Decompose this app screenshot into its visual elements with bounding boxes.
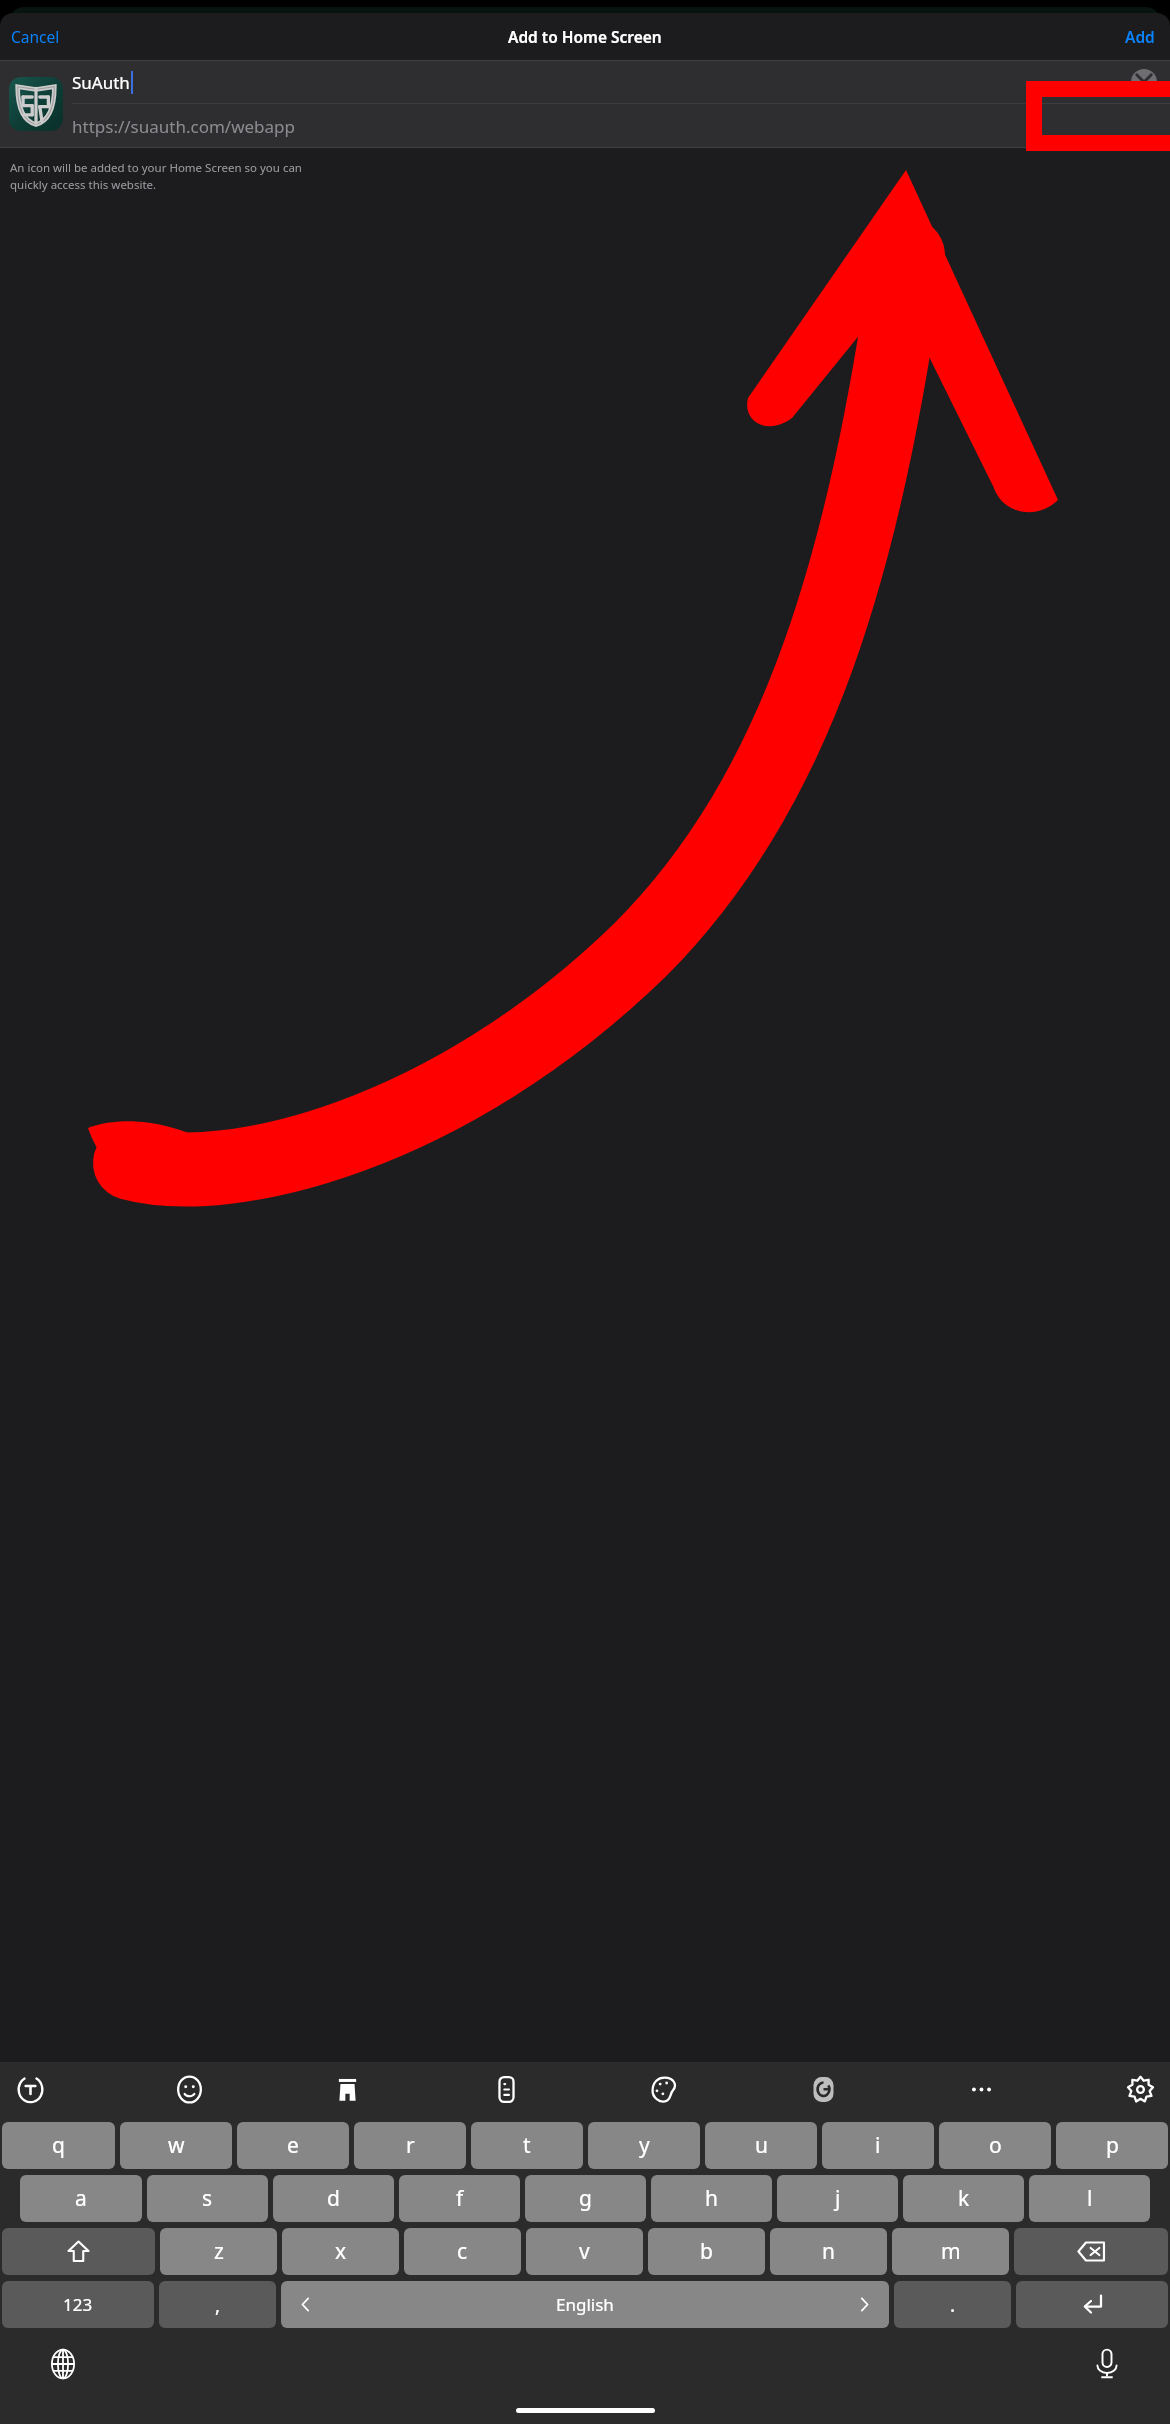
staticText: y — [639, 2131, 650, 2160]
staticText: e — [287, 2131, 299, 2160]
button[interactable]: b — [648, 2228, 765, 2275]
button[interactable]: r — [354, 2122, 466, 2169]
staticText: An icon will be added to your Home Scree… — [10, 160, 302, 192]
staticText: Add — [1125, 26, 1155, 47]
button[interactable]: c — [404, 2228, 521, 2275]
button[interactable]: More options — [959, 2067, 1003, 2111]
staticText: t — [523, 2131, 531, 2160]
button[interactable]: h — [651, 2175, 772, 2222]
staticText: f — [456, 2184, 464, 2213]
button[interactable]: y — [588, 2122, 700, 2169]
button[interactable]: Text formatting — [8, 2067, 52, 2111]
button[interactable]: n — [770, 2228, 887, 2275]
button[interactable]: Clear text — [1131, 69, 1157, 95]
staticText: q — [52, 2131, 65, 2160]
button[interactable]: s — [147, 2175, 268, 2222]
button[interactable]: z — [160, 2228, 277, 2275]
staticText: g — [579, 2184, 592, 2213]
button[interactable]: Settings — [1118, 2067, 1162, 2111]
button[interactable]: j — [777, 2175, 898, 2222]
button[interactable]: Sticker store — [325, 2067, 369, 2111]
button[interactable]: Backspace — [1014, 2228, 1168, 2275]
staticText: m — [941, 2237, 961, 2266]
button[interactable]: o — [939, 2122, 1051, 2169]
staticText: , — [215, 2292, 221, 2318]
button[interactable]: a — [20, 2175, 142, 2222]
button[interactable]: Emoji — [167, 2067, 211, 2111]
staticText: k — [958, 2184, 970, 2213]
button[interactable]: i — [822, 2122, 934, 2169]
button[interactable]: Cancel — [5, 19, 66, 54]
staticText: b — [700, 2237, 713, 2266]
staticText: c — [457, 2237, 468, 2266]
staticText: v — [579, 2237, 590, 2266]
button[interactable]: g — [525, 2175, 646, 2222]
staticText: https://suauth.com/webapp — [72, 115, 295, 138]
staticText: SuAuth — [72, 71, 130, 94]
staticText: p — [1106, 2131, 1119, 2160]
button[interactable]: k — [903, 2175, 1024, 2222]
staticText: n — [822, 2237, 835, 2266]
button[interactable]: u — [705, 2122, 817, 2169]
button[interactable]: Translate — [801, 2067, 845, 2111]
button[interactable]: Add — [1120, 19, 1160, 54]
staticText: Add to Home Screen — [508, 26, 662, 47]
button[interactable]: Themes — [642, 2067, 686, 2111]
staticText: o — [989, 2131, 1002, 2160]
staticText: j — [835, 2184, 841, 2213]
button[interactable]: q — [2, 2122, 115, 2169]
staticText: 123 — [63, 2293, 93, 2316]
staticText: u — [755, 2131, 768, 2160]
button[interactable]: Voice input — [1084, 2341, 1130, 2387]
button[interactable]: v — [526, 2228, 643, 2275]
button[interactable]: d — [273, 2175, 394, 2222]
staticText: z — [214, 2237, 224, 2266]
button[interactable]: p — [1056, 2122, 1168, 2169]
staticText: i — [875, 2131, 881, 2160]
button[interactable]: f — [399, 2175, 520, 2222]
button[interactable]: . — [894, 2281, 1011, 2328]
button[interactable]: English — [281, 2281, 889, 2328]
button[interactable]: 123 — [2, 2281, 154, 2328]
staticText: r — [406, 2131, 415, 2160]
button[interactable]: l — [1029, 2175, 1150, 2222]
staticText: English — [556, 2293, 614, 2316]
button[interactable]: e — [237, 2122, 349, 2169]
staticText: s — [202, 2184, 213, 2213]
staticText: a — [75, 2184, 87, 2213]
button[interactable]: w — [120, 2122, 232, 2169]
button[interactable]: , — [159, 2281, 276, 2328]
button[interactable]: Shift — [2, 2228, 155, 2275]
button[interactable]: t — [471, 2122, 583, 2169]
staticText: d — [327, 2184, 340, 2213]
staticText: w — [168, 2131, 185, 2160]
button[interactable]: Switch keyboard language — [40, 2341, 86, 2387]
staticText: x — [335, 2237, 347, 2266]
staticText: h — [705, 2184, 718, 2213]
button[interactable]: Clipboard — [484, 2067, 528, 2111]
staticText: . — [950, 2292, 956, 2318]
button[interactable]: Return — [1016, 2281, 1168, 2328]
staticText: Cancel — [11, 26, 60, 47]
button[interactable]: x — [282, 2228, 399, 2275]
staticText: l — [1087, 2184, 1093, 2213]
button[interactable]: m — [892, 2228, 1009, 2275]
